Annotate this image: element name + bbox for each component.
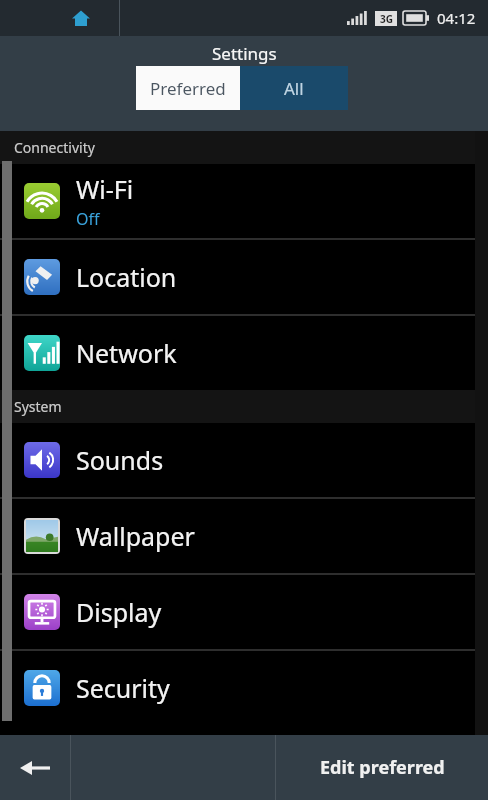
staticText: 04:12 — [437, 8, 476, 28]
staticText: Security — [76, 671, 170, 705]
button[interactable]: Home — [62, 0, 100, 36]
staticText: Connectivity — [14, 138, 95, 157]
button[interactable]: Edit preferred — [276, 735, 488, 800]
staticText: Preferred — [150, 77, 226, 100]
staticText: All — [284, 77, 304, 100]
button[interactable]: Wallpaper — [0, 499, 488, 573]
staticText: 3G — [380, 12, 393, 26]
staticText: Sounds — [76, 443, 164, 477]
staticText: Edit preferred — [320, 755, 445, 780]
button[interactable]: Network — [0, 316, 488, 390]
staticText: Wallpaper — [76, 519, 195, 553]
staticText: Off — [76, 208, 100, 230]
button[interactable]: Sounds — [0, 423, 488, 497]
button[interactable]: Display — [0, 575, 488, 649]
staticText: Settings — [212, 42, 277, 65]
staticText: System — [14, 397, 62, 416]
staticText: Location — [76, 260, 177, 294]
button[interactable]: Wi-Fi — [0, 164, 488, 238]
button[interactable]: Security — [0, 651, 488, 725]
staticText: Wi-Fi — [76, 172, 134, 206]
button[interactable]: Location — [0, 240, 488, 314]
button[interactable]: Back — [0, 735, 70, 800]
button[interactable]: All — [240, 66, 348, 110]
staticText: Network — [76, 336, 177, 370]
button[interactable]: Preferred — [136, 66, 240, 110]
staticText: Display — [76, 595, 162, 629]
